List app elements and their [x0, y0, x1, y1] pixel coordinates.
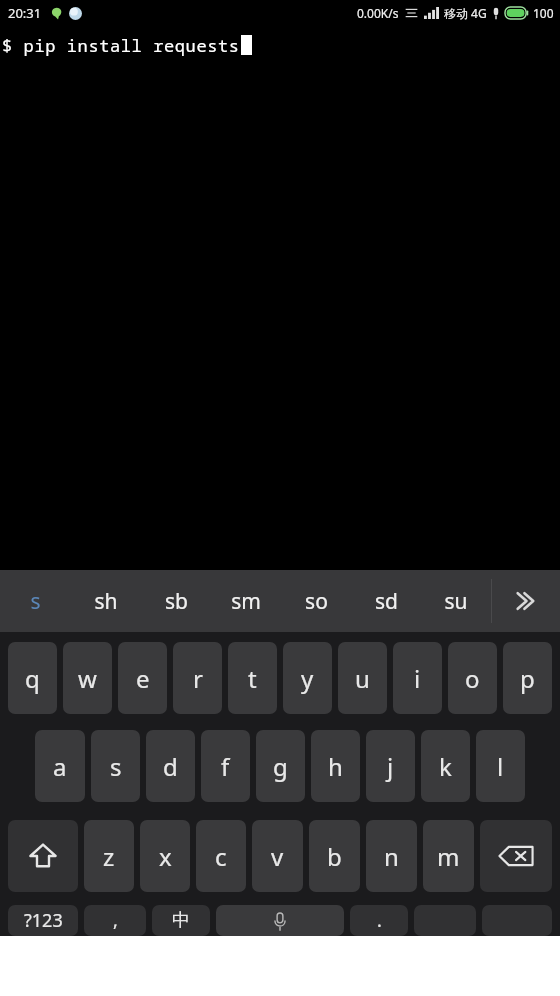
- button[interactable]: v: [252, 820, 303, 892]
- staticText: u: [355, 662, 370, 695]
- staticText: z: [103, 840, 115, 873]
- button[interactable]: a: [35, 730, 85, 802]
- button[interactable]: Symbols: [8, 905, 78, 936]
- staticText: e: [136, 662, 150, 695]
- staticText: 0.00K/s: [357, 5, 399, 21]
- staticText: x: [159, 840, 172, 873]
- button[interactable]: su: [421, 570, 491, 632]
- button[interactable]: p: [503, 642, 552, 714]
- button[interactable]: l: [476, 730, 525, 802]
- button[interactable]: m: [423, 820, 474, 892]
- button[interactable]: u: [338, 642, 387, 714]
- staticText: t: [248, 662, 257, 695]
- button[interactable]: d: [146, 730, 195, 802]
- button[interactable]: Emoji: [414, 905, 476, 936]
- staticText: sd: [375, 587, 398, 616]
- staticText: ?123: [24, 908, 63, 933]
- button[interactable]: Comma: [84, 905, 146, 936]
- staticText: 100: [533, 5, 554, 21]
- button[interactable]: sm: [211, 570, 281, 632]
- staticText: p: [520, 662, 535, 695]
- button[interactable]: i: [393, 642, 442, 714]
- button[interactable]: y: [283, 642, 332, 714]
- staticText: i: [414, 662, 421, 695]
- staticText: ,: [113, 908, 118, 933]
- staticText: w: [78, 662, 97, 695]
- staticText: a: [53, 750, 67, 783]
- staticText: c: [215, 840, 227, 873]
- staticText: s: [110, 750, 122, 783]
- staticText: so: [305, 587, 328, 616]
- button[interactable]: so: [281, 570, 351, 632]
- staticText: q: [25, 662, 40, 695]
- staticText: .: [377, 908, 382, 933]
- button[interactable]: s: [0, 570, 71, 632]
- button[interactable]: s: [91, 730, 140, 802]
- button[interactable]: h: [311, 730, 360, 802]
- staticText: k: [439, 750, 452, 783]
- button[interactable]: z: [84, 820, 134, 892]
- staticText: f: [221, 750, 230, 783]
- button[interactable]: More suggestions: [492, 570, 560, 632]
- button[interactable]: o: [448, 642, 497, 714]
- button[interactable]: sh: [71, 570, 141, 632]
- button[interactable]: Backspace: [480, 820, 552, 892]
- staticText: h: [328, 750, 343, 783]
- staticText: o: [465, 662, 480, 695]
- staticText: 中: [172, 909, 190, 932]
- staticText: 移动 4G: [444, 5, 487, 21]
- staticText: j: [387, 750, 394, 783]
- staticText: su: [444, 587, 468, 616]
- button[interactable]: Language: [152, 905, 210, 936]
- button[interactable]: n: [366, 820, 417, 892]
- staticText: b: [327, 840, 342, 873]
- button[interactable]: sd: [351, 570, 421, 632]
- button[interactable]: x: [140, 820, 190, 892]
- button[interactable]: w: [63, 642, 112, 714]
- button[interactable]: g: [256, 730, 305, 802]
- staticText: 20:31: [8, 4, 42, 22]
- staticText: $ pip install requests: [2, 34, 240, 57]
- button[interactable]: Space, voice input: [216, 905, 344, 936]
- button[interactable]: f: [201, 730, 250, 802]
- staticText: sb: [165, 587, 188, 616]
- button[interactable]: sb: [141, 570, 211, 632]
- button[interactable]: Shift: [8, 820, 78, 892]
- button[interactable]: e: [118, 642, 167, 714]
- staticText: v: [271, 840, 284, 873]
- staticText: l: [497, 750, 504, 783]
- button[interactable]: Period: [350, 905, 408, 936]
- staticText: sh: [94, 587, 118, 616]
- staticText: m: [437, 840, 460, 873]
- staticText: s: [30, 587, 41, 616]
- staticText: r: [193, 662, 203, 695]
- staticText: g: [273, 750, 288, 783]
- button[interactable]: j: [366, 730, 415, 802]
- button[interactable]: q: [8, 642, 57, 714]
- staticText: sm: [231, 587, 261, 616]
- button[interactable]: b: [309, 820, 360, 892]
- button[interactable]: c: [196, 820, 246, 892]
- button[interactable]: r: [173, 642, 222, 714]
- button[interactable]: k: [421, 730, 470, 802]
- staticText: y: [301, 662, 314, 695]
- staticText: n: [384, 840, 399, 873]
- button[interactable]: t: [228, 642, 277, 714]
- staticText: d: [163, 750, 178, 783]
